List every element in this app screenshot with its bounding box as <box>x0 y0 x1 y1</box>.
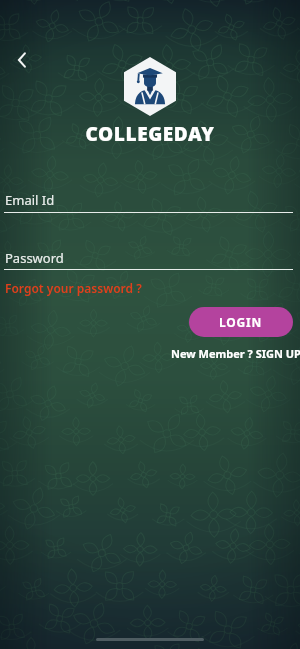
staticText: Forgot your password ? <box>5 280 142 296</box>
staticText: Email Id <box>5 191 55 209</box>
staticText: New Member ? SIGN UP <box>171 346 300 361</box>
button[interactable]: Email Id <box>0 188 300 216</box>
button[interactable]: New Member ? SIGN UP <box>168 344 300 363</box>
button[interactable]: LOGIN <box>189 307 293 337</box>
staticText: LOGIN <box>219 314 263 330</box>
button[interactable]: Back <box>4 42 40 78</box>
staticText: Password <box>5 249 64 267</box>
staticText: COLLEGEDAY <box>0 121 300 147</box>
button[interactable]: Forgot your password ? <box>2 277 145 299</box>
button[interactable]: Password <box>0 246 300 274</box>
